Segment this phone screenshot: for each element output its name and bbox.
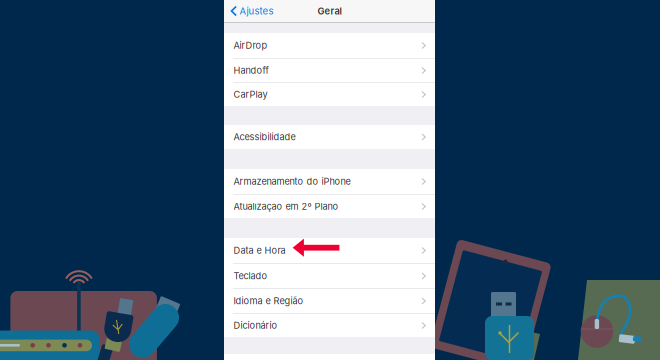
button[interactable]: Teclado bbox=[224, 263, 435, 288]
staticText: AirDrop bbox=[234, 40, 268, 51]
button[interactable]: Idioma e Região bbox=[224, 288, 435, 313]
staticText: Data e Hora bbox=[234, 245, 286, 256]
staticText: Acessibilidade bbox=[234, 131, 296, 142]
button[interactable]: Armazenamento do iPhone bbox=[224, 169, 435, 194]
button[interactable]: Atualização em 2º Plano bbox=[224, 194, 435, 218]
staticText: Idioma e Região bbox=[234, 295, 304, 306]
staticText: Teclado bbox=[234, 270, 268, 281]
button[interactable]: Acessibilidade bbox=[224, 125, 435, 149]
staticText: Dicionário bbox=[234, 320, 278, 331]
staticText: Armazenamento do iPhone bbox=[234, 176, 351, 187]
staticText: Geral bbox=[317, 5, 341, 17]
staticText: Atualização em 2º Plano bbox=[234, 201, 339, 212]
button[interactable]: Dicionário bbox=[224, 313, 435, 337]
staticText: CarPlay bbox=[234, 89, 268, 100]
button[interactable]: Handoff bbox=[224, 58, 435, 82]
button[interactable]: CarPlay bbox=[224, 82, 435, 106]
button[interactable]: AirDrop bbox=[224, 33, 435, 58]
staticText: Ajustes bbox=[239, 5, 273, 17]
button[interactable]: Ajustes bbox=[224, 0, 273, 22]
staticText: Handoff bbox=[234, 65, 269, 76]
button[interactable]: Data e Hora bbox=[224, 238, 435, 263]
